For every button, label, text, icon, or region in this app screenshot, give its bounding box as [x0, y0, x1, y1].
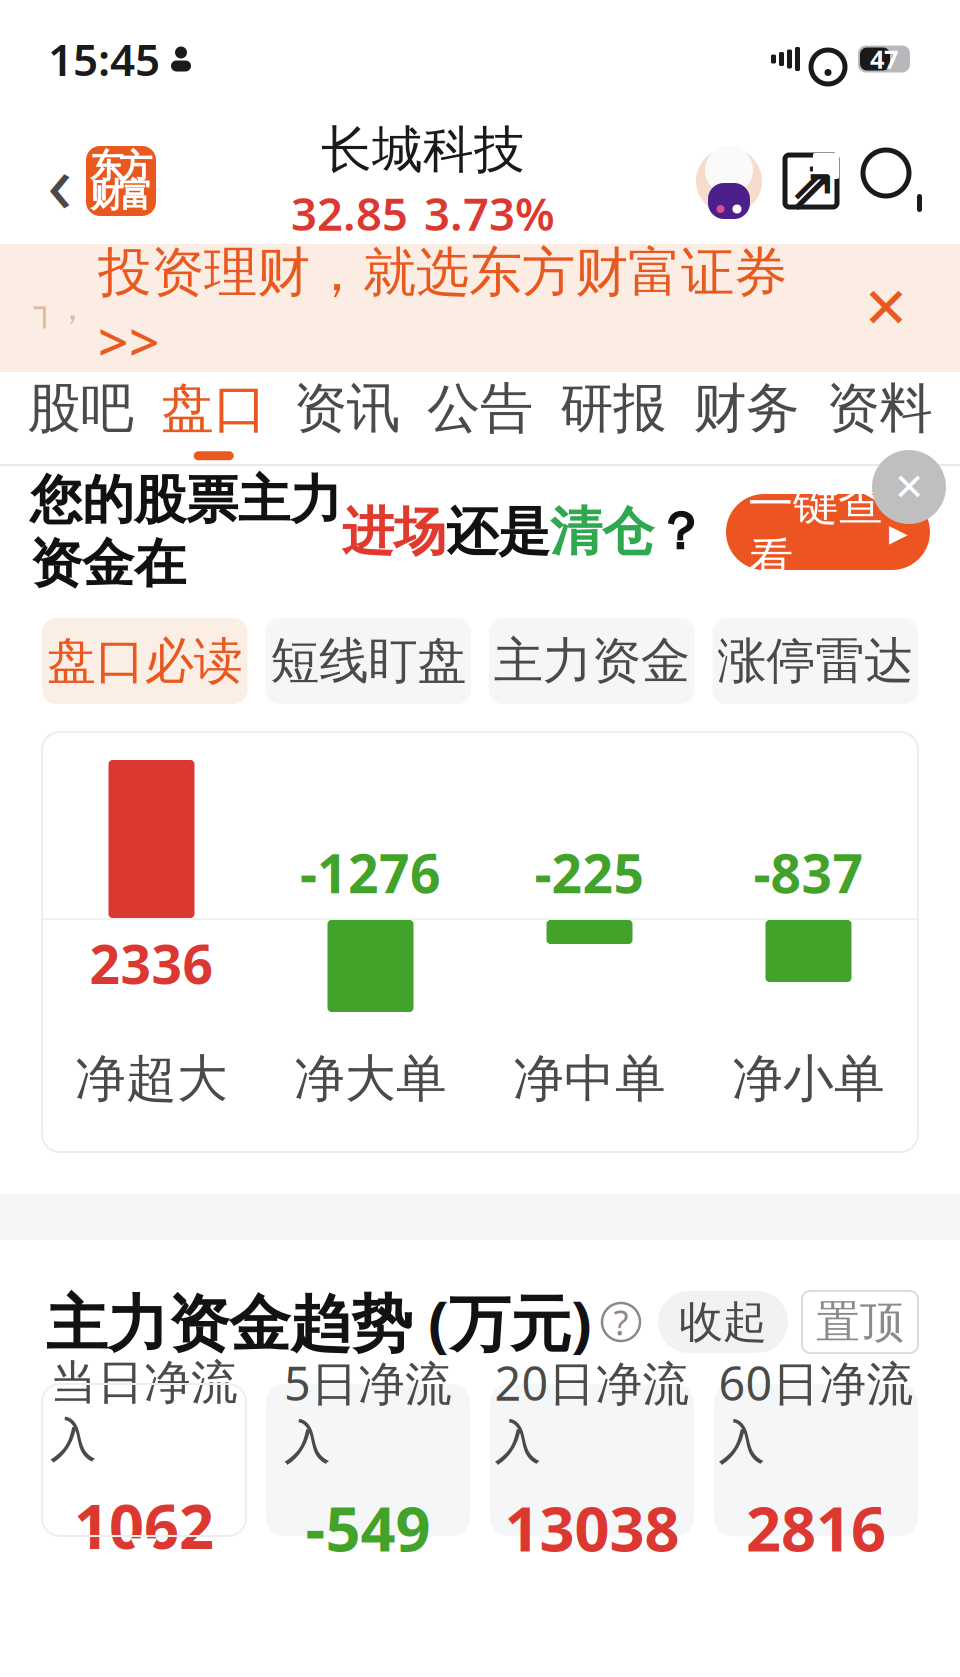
button[interactable]: 关闭: [846, 268, 926, 348]
staticText: 净中单: [513, 1048, 666, 1110]
button[interactable]: 研报: [547, 372, 680, 464]
staticText: 研报: [560, 376, 666, 441]
staticText: ┐，: [34, 287, 90, 329]
staticText: -225: [534, 837, 644, 908]
staticText: 净超大: [75, 1048, 228, 1110]
staticText: 13038: [504, 1487, 679, 1568]
staticText: 股吧: [28, 376, 134, 441]
staticText: -837: [753, 837, 863, 908]
staticText: ↗: [785, 153, 839, 226]
staticText: 还是: [446, 500, 550, 564]
button[interactable]: 60日净流入: [714, 1384, 918, 1558]
button[interactable]: 短线盯盘: [265, 618, 471, 704]
button[interactable]: 公告: [413, 372, 546, 464]
staticText: ▸: [889, 511, 908, 553]
staticText: 20日净流入: [494, 1352, 689, 1471]
staticText: 长城科技: [321, 119, 525, 181]
staticText: 2336: [89, 928, 213, 999]
staticText: 2816: [746, 1487, 886, 1568]
staticText: 您的股票主力资金在: [30, 468, 342, 596]
staticText: ✕: [862, 276, 909, 340]
staticText: ?: [613, 1299, 628, 1345]
staticText: 资讯: [294, 376, 400, 441]
staticText: 短线盯盘: [270, 631, 466, 691]
staticText: ‹: [47, 126, 73, 236]
button[interactable]: 智能助手: [690, 141, 768, 221]
staticText: 盘口: [161, 376, 267, 441]
staticText: 32.85: [291, 183, 408, 243]
staticText: 3.73%: [424, 183, 555, 243]
button[interactable]: 主力资金: [489, 618, 694, 704]
button[interactable]: 当日净流入: [42, 1384, 246, 1558]
staticText: ↗: [786, 148, 835, 214]
button[interactable]: 搜索: [854, 138, 934, 224]
staticText: 60日净流入: [718, 1352, 913, 1471]
button[interactable]: 涨停雷达: [712, 618, 918, 704]
button[interactable]: 关闭广告: [872, 450, 946, 524]
button[interactable]: 股吧: [14, 372, 147, 464]
staticText: -549: [305, 1487, 430, 1568]
staticText: 15:45: [48, 30, 160, 88]
staticText: 净大单: [294, 1048, 447, 1110]
staticText: 主力资金: [494, 631, 690, 691]
button[interactable]: 盘口: [147, 372, 280, 464]
staticText: -1276: [300, 837, 441, 908]
button[interactable]: 投资理财，就选东方财富证券>>: [98, 240, 787, 376]
staticText: 47: [870, 42, 898, 76]
staticText: ▾: [130, 1517, 157, 1577]
button[interactable]: 5日净流入: [266, 1384, 470, 1558]
staticText: 东: [90, 146, 123, 187]
button[interactable]: 返回: [34, 143, 86, 219]
staticText: ✕: [893, 466, 924, 508]
button[interactable]: 盘口必读: [42, 618, 247, 704]
staticText: 公告: [427, 376, 533, 441]
staticText: 1062: [74, 1485, 214, 1566]
button[interactable]: 收起: [658, 1291, 788, 1353]
staticText: 5日净流入: [284, 1352, 452, 1471]
staticText: 盘口必读: [47, 631, 243, 691]
button[interactable]: 20日净流入: [490, 1384, 694, 1558]
staticText: 资料: [826, 376, 932, 441]
staticText: 涨停雷达: [717, 631, 913, 691]
staticText: 净小单: [732, 1048, 885, 1110]
staticText: 投资理财，就选东方财富证券>>: [98, 240, 787, 376]
button[interactable]: 说明: [592, 1293, 650, 1351]
button[interactable]: 资料: [813, 372, 946, 464]
staticText: 方: [119, 146, 152, 187]
staticText: 主力资金趋势 (万元): [46, 1281, 592, 1363]
button[interactable]: 财务: [680, 372, 813, 464]
staticText: 收起: [679, 1295, 767, 1349]
staticText: 置顶: [816, 1295, 904, 1349]
staticText: 当日净流入: [50, 1354, 238, 1469]
staticText: 清仓: [550, 500, 654, 564]
button[interactable]: 置顶: [802, 1291, 918, 1353]
staticText: ？: [654, 500, 706, 564]
button[interactable]: 分享: [768, 138, 854, 224]
staticText: 一键查看: [748, 476, 883, 588]
button[interactable]: 资讯: [280, 372, 413, 464]
staticText: 富: [119, 175, 152, 216]
staticText: 进场: [342, 500, 446, 564]
button[interactable]: 一键查看: [726, 494, 930, 570]
staticText: 财务: [693, 376, 799, 441]
staticText: 财: [90, 175, 123, 216]
button[interactable]: 东方财富: [86, 146, 156, 216]
